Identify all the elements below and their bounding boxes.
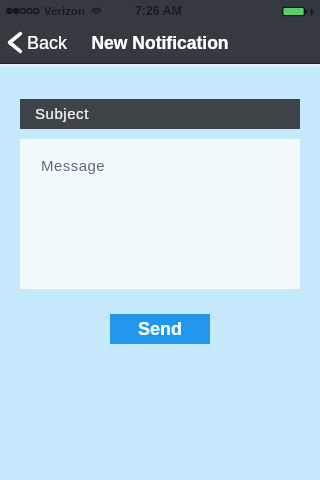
staticText: Send bbox=[138, 319, 183, 339]
button[interactable]: Back bbox=[0, 22, 76, 63]
button[interactable]: Subject bbox=[20, 99, 300, 129]
staticText: Back bbox=[27, 33, 68, 53]
staticText: 7:26 AM bbox=[135, 4, 182, 18]
staticText: Verizon bbox=[44, 5, 85, 18]
staticText: Subject bbox=[35, 105, 89, 122]
button[interactable]: Message bbox=[20, 139, 300, 289]
other: Back bbox=[8, 32, 22, 53]
staticText: New Notification bbox=[91, 33, 229, 53]
staticText: Message bbox=[41, 157, 106, 174]
button[interactable]: Send bbox=[110, 314, 210, 344]
